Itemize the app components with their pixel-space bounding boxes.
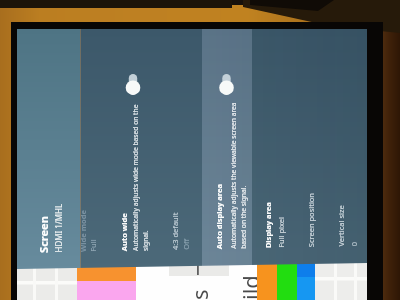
button[interactable] [17,29,367,300]
